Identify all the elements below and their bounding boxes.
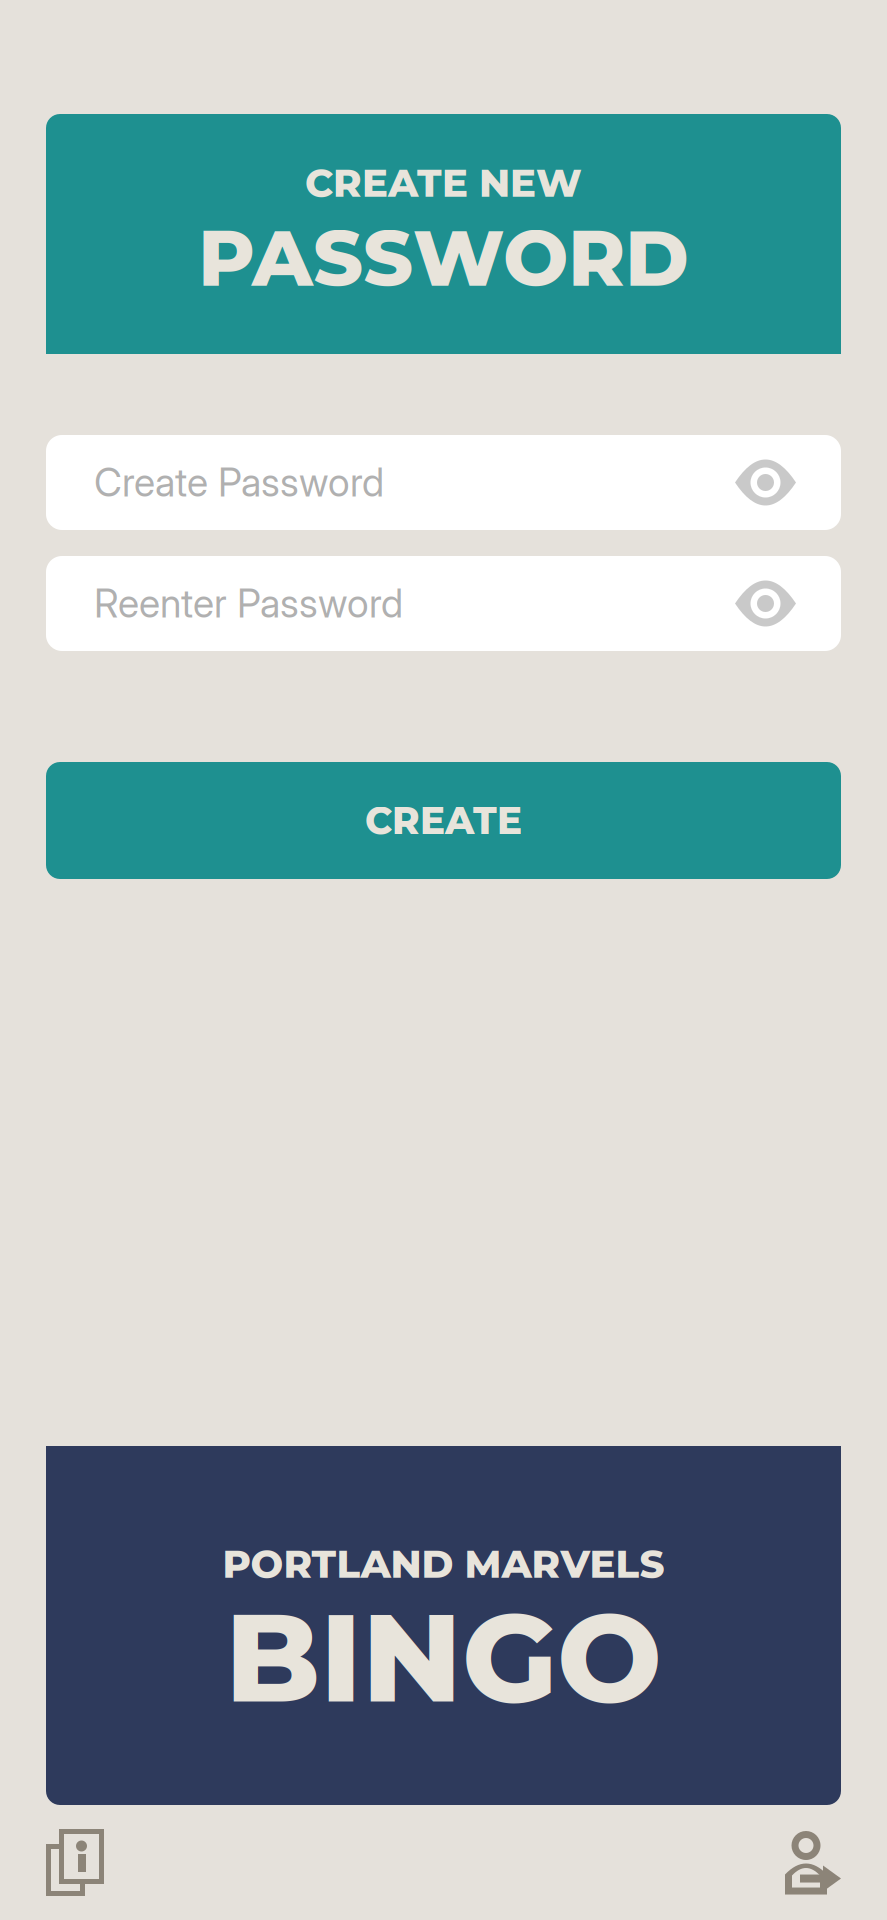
- staticText: BINGO: [225, 1581, 662, 1733]
- button[interactable]: CREATE: [46, 762, 841, 879]
- staticText: PASSWORD: [198, 211, 689, 305]
- button[interactable]: Information: [46, 1829, 104, 1896]
- staticText: CREATE: [365, 798, 522, 843]
- staticText: Reenter Password: [94, 580, 403, 627]
- staticText: PORTLAND MARVELS: [222, 1540, 664, 1587]
- staticText: CREATE NEW: [305, 159, 582, 206]
- staticText: Create Password: [94, 459, 384, 506]
- button[interactable]: Sign out: [783, 1830, 841, 1894]
